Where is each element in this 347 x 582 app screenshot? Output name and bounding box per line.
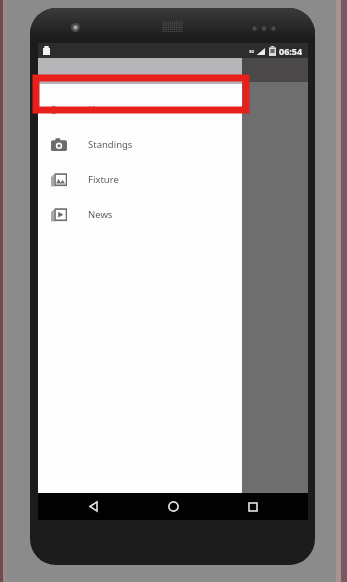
button[interactable]: Home	[38, 92, 242, 127]
button[interactable]: Fixture	[38, 162, 242, 197]
button[interactable]: Home	[148, 493, 198, 520]
button[interactable]	[38, 58, 242, 84]
other: News	[51, 207, 67, 223]
other: Standings	[51, 137, 67, 153]
button[interactable]: Recent apps	[228, 493, 278, 520]
button[interactable]: Back	[68, 493, 118, 520]
staticText: Home	[88, 103, 116, 116]
staticText: Standings	[88, 138, 133, 151]
button[interactable]: Standings	[38, 127, 242, 162]
staticText: 06:54	[279, 45, 303, 57]
other: Fixture	[51, 172, 67, 188]
staticText: News	[88, 208, 113, 221]
staticText: 3G	[249, 49, 255, 54]
other: Home	[51, 102, 67, 118]
button[interactable]: News	[38, 197, 242, 232]
staticText: Fixture	[88, 173, 119, 186]
